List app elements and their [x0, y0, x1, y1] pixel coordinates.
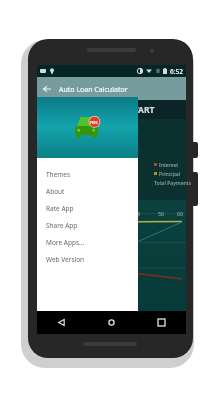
staticText: Total Payments — [154, 179, 192, 186]
staticText: Web Version — [46, 255, 85, 264]
staticText: 50 — [158, 210, 164, 217]
staticText: Rate App — [46, 204, 74, 213]
button[interactable]: Back — [37, 311, 86, 334]
button[interactable]: Rate App — [37, 200, 138, 217]
staticText: About — [46, 187, 65, 196]
staticText: More Apps... — [46, 238, 85, 247]
staticText: Share App — [46, 221, 78, 230]
button[interactable]: More Apps... — [37, 234, 138, 251]
staticText: 6:52 — [170, 67, 183, 76]
button[interactable]: Themes — [37, 166, 138, 183]
staticText: FREE — [90, 120, 98, 124]
button[interactable]: Recent apps — [136, 311, 186, 334]
staticText: Auto Loan Calculator — [59, 85, 128, 95]
staticText: START — [129, 104, 155, 116]
staticText: 60 — [177, 210, 183, 217]
staticText: Principal — [159, 170, 181, 177]
staticText: Interest — [159, 161, 179, 168]
button[interactable]: Home — [86, 311, 136, 334]
staticText: Themes — [46, 170, 71, 179]
button[interactable]: About — [37, 183, 138, 200]
staticText: 4 — [137, 210, 140, 217]
button[interactable]: Back — [39, 77, 55, 100]
button[interactable]: Web Version — [37, 251, 138, 268]
button[interactable]: Share App — [37, 217, 138, 234]
